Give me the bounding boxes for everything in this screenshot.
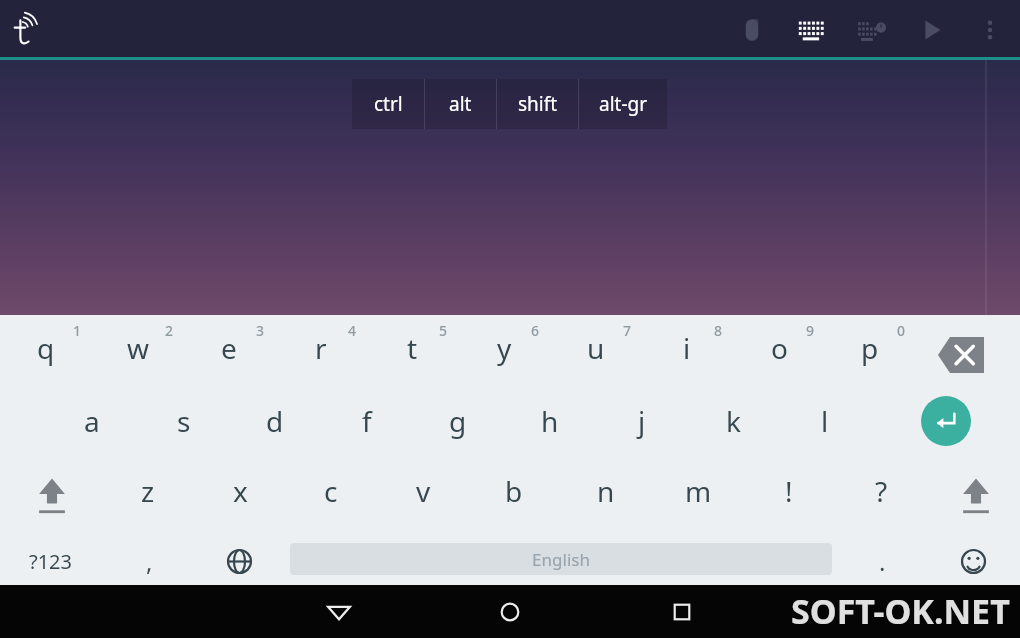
staticText: English — [532, 548, 590, 571]
button[interactable]: w — [93, 317, 183, 379]
button[interactable]: alt-gr — [579, 79, 667, 129]
staticText: ?123 — [29, 548, 72, 575]
staticText: u — [587, 329, 605, 367]
staticText: v — [416, 472, 431, 510]
button[interactable]: n — [561, 460, 651, 522]
button[interactable]: More options — [968, 8, 1012, 52]
staticText: shift — [518, 91, 558, 117]
staticText: e — [221, 329, 237, 367]
button[interactable]: ? — [836, 460, 926, 522]
button[interactable]: Backspace — [938, 337, 984, 373]
button[interactable]: f — [322, 390, 412, 452]
staticText: i — [683, 329, 691, 367]
button[interactable]: c — [286, 460, 376, 522]
button[interactable]: ! — [744, 460, 834, 522]
button[interactable]: Emoji — [946, 537, 1000, 585]
button[interactable]: Recent apps — [656, 586, 708, 638]
staticText: , — [146, 545, 153, 578]
button[interactable]: Mouse input — [730, 8, 774, 52]
button[interactable]: i — [642, 317, 732, 379]
button[interactable]: . — [854, 537, 910, 585]
button[interactable]: , — [114, 537, 184, 585]
button[interactable]: ctrl — [352, 79, 424, 129]
button[interactable]: Keyboard — [790, 8, 834, 52]
staticText: ! — [785, 472, 793, 510]
button[interactable]: z — [103, 460, 193, 522]
staticText: c — [324, 472, 338, 510]
staticText: y — [497, 329, 512, 367]
button[interactable]: r — [276, 317, 366, 379]
staticText: o — [771, 329, 788, 367]
staticText: alt-gr — [599, 91, 648, 117]
staticText: SOFT-OK.NET — [791, 588, 1010, 634]
staticText: f — [362, 402, 372, 440]
button[interactable]: ?123 — [8, 537, 92, 585]
button[interactable]: Change language — [212, 537, 266, 585]
button[interactable]: English — [290, 543, 832, 575]
button[interactable]: Home — [484, 586, 536, 638]
button[interactable]: Shift — [24, 467, 80, 519]
staticText: t — [407, 329, 418, 367]
staticText: 4 — [348, 321, 357, 340]
button[interactable]: j — [597, 390, 687, 452]
button[interactable]: h — [505, 390, 595, 452]
staticText: alt — [449, 91, 472, 117]
button[interactable]: b — [469, 460, 559, 522]
button[interactable]: k — [688, 390, 778, 452]
staticText: m — [685, 472, 712, 510]
staticText: h — [541, 402, 559, 440]
staticText: . — [879, 545, 886, 578]
button[interactable]: q — [1, 317, 91, 379]
staticText: x — [233, 472, 248, 510]
button[interactable]: App logo — [6, 6, 54, 54]
button[interactable]: Play — [910, 8, 954, 52]
staticText: 8 — [714, 321, 723, 340]
staticText: w — [127, 329, 150, 367]
button[interactable]: g — [413, 390, 503, 452]
button[interactable]: shift — [497, 79, 578, 129]
staticText: 3 — [256, 321, 265, 340]
staticText: q — [37, 329, 55, 367]
button[interactable]: l — [780, 390, 870, 452]
staticText: n — [597, 472, 615, 510]
button[interactable]: t — [367, 317, 457, 379]
staticText: j — [638, 402, 646, 440]
staticText: z — [141, 472, 155, 510]
staticText: 7 — [623, 321, 632, 340]
staticText: 6 — [531, 321, 540, 340]
staticText: g — [449, 402, 467, 440]
staticText: 2 — [165, 321, 174, 340]
button[interactable]: v — [378, 460, 468, 522]
button[interactable]: a — [47, 390, 137, 452]
staticText: l — [821, 402, 829, 440]
staticText: b — [505, 472, 523, 510]
button[interactable]: m — [653, 460, 743, 522]
staticText: k — [726, 402, 741, 440]
button[interactable]: Back — [313, 586, 365, 638]
staticText: r — [315, 329, 327, 367]
button[interactable]: p — [825, 317, 915, 379]
button[interactable]: Shift — [948, 467, 1004, 519]
staticText: p — [861, 329, 879, 367]
button[interactable]: x — [195, 460, 285, 522]
staticText: ? — [875, 472, 888, 510]
button[interactable]: e — [184, 317, 274, 379]
staticText: 0 — [897, 321, 906, 340]
staticText: ctrl — [374, 91, 403, 117]
button[interactable]: y — [459, 317, 549, 379]
staticText: 5 — [439, 321, 448, 340]
staticText: d — [266, 402, 284, 440]
staticText: 9 — [806, 321, 815, 340]
staticText: 1 — [73, 321, 82, 340]
staticText: s — [177, 402, 191, 440]
button[interactable]: u — [551, 317, 641, 379]
button[interactable]: alt — [425, 79, 496, 129]
button[interactable]: s — [139, 390, 229, 452]
button[interactable]: d — [230, 390, 320, 452]
button[interactable]: Enter — [921, 396, 971, 446]
button[interactable]: Special keyboard — [850, 8, 894, 52]
button[interactable]: o — [734, 317, 824, 379]
staticText: a — [84, 402, 100, 440]
